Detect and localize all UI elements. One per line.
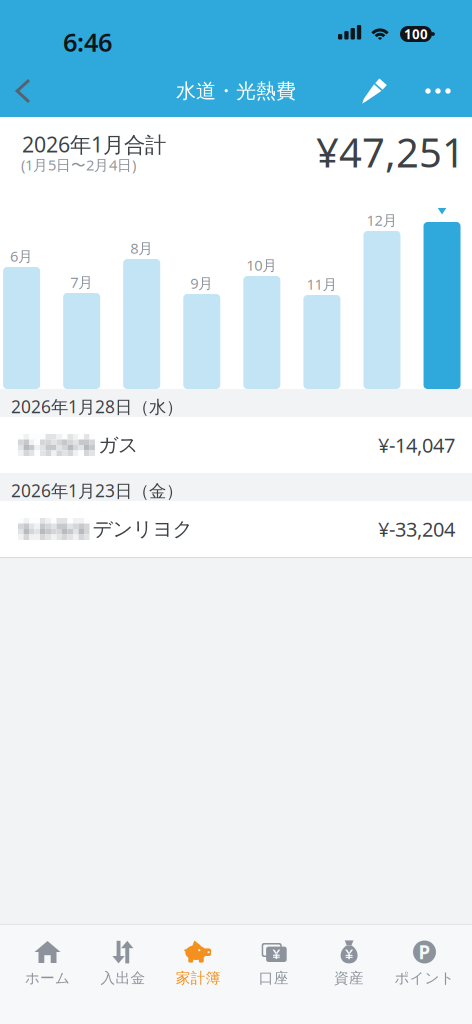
- staticText: ホーム: [25, 969, 70, 987]
- button[interactable]: 資産: [311, 940, 387, 1000]
- staticText: 家計簿: [176, 969, 221, 987]
- staticText: 2026年1月28日（水）: [11, 395, 183, 418]
- staticText: 7月: [70, 272, 93, 292]
- button[interactable]: 家計簿: [161, 940, 236, 1000]
- staticText: 100: [404, 25, 428, 43]
- staticText: ポイント: [394, 969, 454, 987]
- staticText: 11月: [306, 274, 337, 294]
- button[interactable]: P: [387, 940, 462, 1000]
- staticText: 口座: [259, 969, 289, 987]
- staticText: 10月: [246, 255, 277, 275]
- staticText: ¥-33,204: [378, 516, 455, 542]
- staticText: デンリヨク: [92, 517, 192, 541]
- button[interactable]: デンリヨク: [0, 501, 472, 557]
- staticText: 資産: [334, 969, 364, 987]
- staticText: 水道・光熱費: [176, 79, 296, 103]
- staticText: ガス: [98, 433, 138, 457]
- button[interactable]: その他: [414, 65, 462, 117]
- button[interactable]: 入出金: [85, 940, 161, 1000]
- staticText: 2026年1月合計: [22, 130, 166, 158]
- staticText: ¥-14,047: [378, 432, 455, 458]
- staticText: 9月: [190, 273, 213, 293]
- staticText: 8月: [130, 238, 153, 258]
- staticText: P: [418, 940, 430, 964]
- staticText: 2026年1月23日（金）: [11, 479, 183, 502]
- button[interactable]: ガス: [0, 417, 472, 473]
- button[interactable]: 口座: [236, 940, 311, 1000]
- staticText: (1月5日〜2月4日): [21, 155, 136, 174]
- button[interactable]: 戻る: [0, 65, 46, 117]
- button[interactable]: 編集: [348, 65, 400, 117]
- staticText: 6:46: [63, 25, 112, 59]
- staticText: 12月: [366, 210, 397, 230]
- staticText: 入出金: [100, 969, 145, 987]
- staticText: 6月: [10, 246, 33, 266]
- staticText: ¥47,251: [316, 125, 465, 178]
- button[interactable]: ホーム: [10, 940, 85, 1000]
